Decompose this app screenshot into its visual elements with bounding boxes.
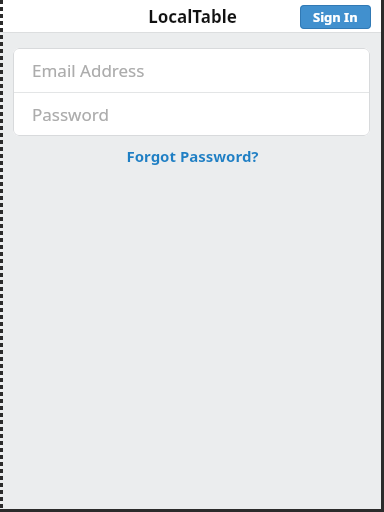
staticText: LocalTable (148, 5, 237, 28)
staticText: Sign In (313, 8, 358, 26)
staticText: Password (32, 103, 109, 126)
button[interactable]: Password (13, 93, 370, 136)
staticText: Forgot Password? (126, 146, 259, 166)
staticText: Email Address (32, 59, 145, 82)
button[interactable]: Forgot Password? (0, 145, 384, 167)
button[interactable]: Email Address (13, 48, 370, 92)
button[interactable]: Sign In (300, 5, 371, 29)
